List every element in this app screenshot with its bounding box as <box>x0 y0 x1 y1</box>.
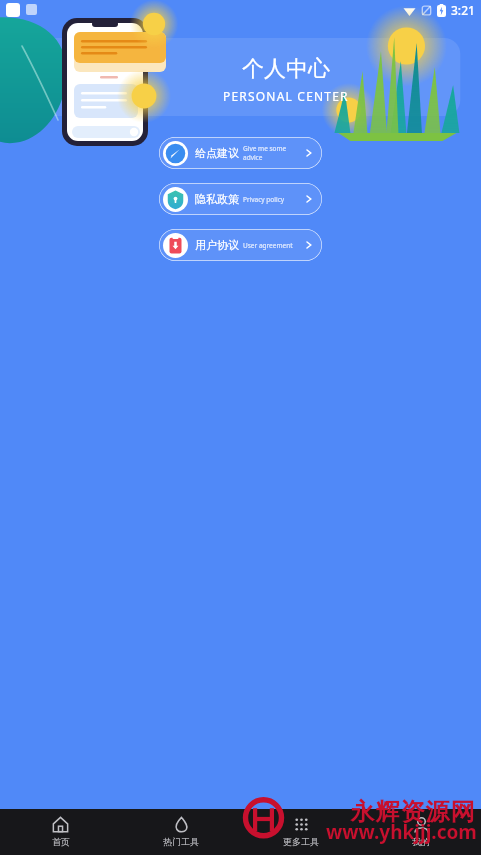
staticText: 个人中心 <box>242 55 330 83</box>
staticText: User agreement <box>243 241 305 250</box>
staticText: 3:21 <box>451 2 475 18</box>
button[interactable]: 用户协议 <box>159 229 322 261</box>
staticText: 给点建议 <box>195 146 239 160</box>
staticText: www.yhkjjj.com <box>326 819 477 845</box>
staticText: 用户协议 <box>195 238 239 252</box>
staticText: 永辉资源网 <box>350 797 475 827</box>
staticText: Give me some advice <box>243 144 305 162</box>
staticText: 更多工具 <box>283 836 319 847</box>
staticText: 热门工具 <box>163 836 199 847</box>
staticText: 隐私政策 <box>195 192 239 206</box>
button[interactable]: 隐私政策 <box>159 183 322 215</box>
button[interactable]: 热门工具 <box>121 809 241 855</box>
button[interactable]: 给点建议 <box>159 137 322 169</box>
staticText: 我的 <box>412 836 430 847</box>
staticText: Privacy policy <box>243 195 305 204</box>
button[interactable]: 我的 <box>361 809 481 855</box>
button[interactable]: 首页 <box>0 809 121 855</box>
button[interactable]: 更多工具 <box>241 809 361 855</box>
staticText: 首页 <box>52 836 70 847</box>
staticText: PERSONAL CENTER <box>223 88 349 104</box>
